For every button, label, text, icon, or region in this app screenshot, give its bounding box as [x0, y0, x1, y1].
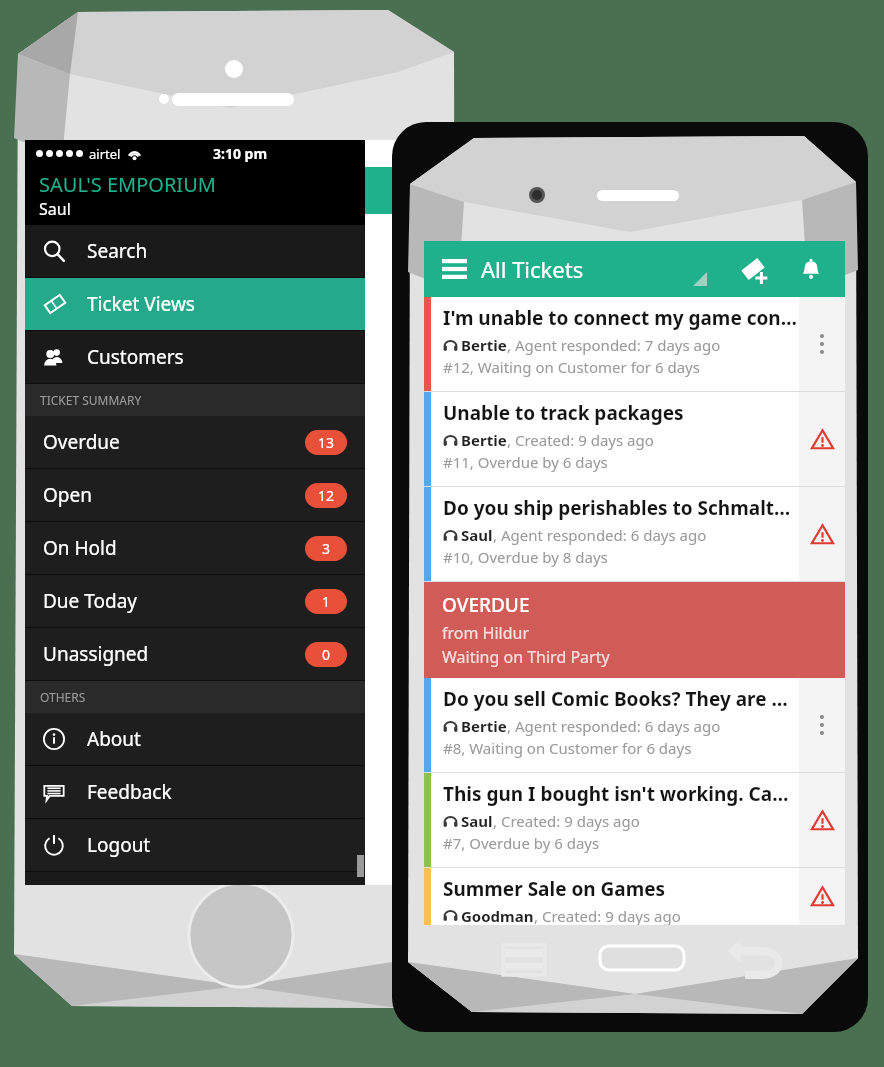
staticText: #12, Waiting on Customer for 6 days [443, 357, 700, 377]
staticText: Waiting on Third Party [442, 646, 610, 668]
staticText: OTHERS [40, 689, 86, 705]
button[interactable]: Notifications [791, 249, 831, 289]
staticText: T [42, 680, 55, 710]
staticText: Search [87, 238, 148, 264]
staticText: 3 [322, 539, 331, 558]
button[interactable]: New ticket [733, 249, 773, 289]
staticText: SAUL'S EMPORIUM [39, 171, 216, 198]
staticText: TICKET SUMMARY [40, 392, 142, 408]
staticText: 13 [318, 433, 335, 452]
staticText: Do you sell Comic Books? They are out of… [443, 686, 799, 712]
button[interactable]: Do you ship perishables to Schmaltzburg? [424, 487, 845, 581]
staticText: Due Today [43, 588, 138, 614]
staticText: 12 [318, 486, 335, 505]
staticText: Saul [461, 525, 493, 545]
button[interactable]: On Hold [25, 522, 365, 574]
staticText: About [87, 726, 141, 752]
button[interactable]: This gun I bought isn't working. Can I g… [424, 773, 845, 867]
staticText: airtel [89, 145, 121, 163]
staticText: Saul [39, 198, 71, 220]
staticText: , Created: 9 days ago [493, 811, 640, 831]
staticText: G [42, 710, 52, 728]
staticText: Be [42, 508, 58, 526]
button[interactable]: Due Today [25, 575, 365, 627]
staticText: Feedback [87, 779, 172, 805]
staticText: Overdue [43, 429, 120, 455]
staticText: 1 [322, 592, 331, 611]
staticText: D [42, 377, 59, 407]
staticText: , Created: 9 days ago [534, 906, 681, 925]
staticText: , Agent responded: 7 days ago [507, 335, 721, 355]
staticText: I'm unable to connect my game console to… [443, 305, 799, 331]
staticText: All Tickets [481, 254, 584, 284]
staticText: Bertie [461, 716, 507, 736]
button[interactable]: Customers [25, 331, 365, 383]
staticText: Saul [461, 811, 493, 831]
button[interactable]: Unassigned [25, 628, 365, 680]
staticText: Summer Sale on Games [443, 876, 666, 902]
button[interactable]: About [25, 713, 365, 765]
staticText: Ticket Views [87, 291, 195, 317]
staticText: from Hildur [442, 622, 530, 644]
staticText: Open [43, 482, 92, 508]
staticText: Goodman [461, 906, 534, 925]
staticText: V [42, 478, 57, 508]
staticText: , Agent responded: 6 days ago [507, 716, 721, 736]
staticText: Do you ship perishables to Schmaltzburg? [443, 495, 799, 521]
button[interactable]: Overdue [25, 416, 365, 468]
button[interactable]: OVERDUE [424, 582, 845, 678]
button[interactable]: Ticket Views [25, 278, 365, 330]
button[interactable]: Open navigation drawer [437, 252, 471, 286]
staticText: #10, Overdue by 8 days [443, 547, 608, 567]
staticText: Unassigned [43, 641, 149, 667]
staticText: #7, Overdue by 6 days [443, 833, 600, 853]
button[interactable]: Feedback [25, 766, 365, 818]
staticText: #11, Overdue by 6 days [443, 452, 608, 472]
staticText: , Created: 9 days ago [507, 430, 654, 450]
button[interactable]: I'm unable to connect my game console to… [424, 297, 845, 391]
button[interactable]: Open [25, 469, 365, 521]
staticText: OVERDUE [442, 592, 530, 618]
button[interactable]: Search [25, 225, 365, 277]
staticText: #8, Waiting on Customer for 6 days [443, 738, 692, 758]
staticText: , Agent responded: 6 days ago [493, 525, 707, 545]
staticText: 3:10 pm [213, 144, 268, 163]
staticText: Logout [87, 832, 151, 858]
button[interactable]: Do you sell Comic Books? They are out of… [424, 678, 845, 772]
staticText: Be [42, 214, 58, 232]
staticText: Bertie [461, 430, 507, 450]
staticText: Unable to track packages [443, 400, 684, 426]
staticText: Bertie [461, 335, 507, 355]
button[interactable]: Unable to track packages [424, 392, 845, 486]
staticText: Customers [87, 344, 184, 370]
button[interactable]: Logout [25, 819, 365, 871]
staticText: 0 [322, 645, 331, 664]
staticText: Sa [42, 407, 57, 425]
staticText: This gun I bought isn't working. Can I g… [443, 781, 799, 807]
staticText: U [42, 276, 59, 306]
button[interactable]: Summer Sale on Games [424, 868, 845, 925]
staticText: D [42, 579, 59, 609]
staticText: On Hold [43, 535, 117, 561]
staticText: Bu [42, 306, 59, 324]
